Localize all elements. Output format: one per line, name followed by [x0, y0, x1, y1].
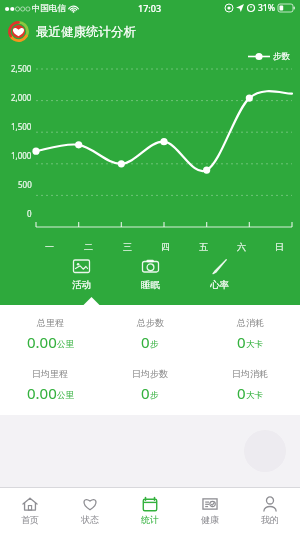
staticText: 2,500 [11, 63, 32, 74]
staticText: 步 [150, 339, 159, 350]
staticText: 一 [45, 241, 54, 252]
staticText: 总消耗 [237, 317, 264, 328]
staticText: 健康 [201, 514, 219, 525]
button[interactable]: 健康 [180, 488, 240, 533]
staticText: 2,000 [11, 92, 32, 103]
staticText: 1,000 [11, 150, 32, 161]
staticText: 步 [150, 390, 159, 401]
button[interactable]: 心率 [185, 253, 254, 291]
staticText: 31% [258, 2, 275, 14]
staticText: 五 [199, 241, 208, 252]
staticText: 17:03 [138, 2, 162, 14]
staticText: 500 [18, 179, 32, 190]
staticText: 步数 [273, 51, 290, 62]
staticText: 状态 [81, 514, 99, 525]
button[interactable]: 我的 [240, 488, 300, 533]
staticText: 四 [161, 241, 170, 252]
button[interactable]: 睡眠 [116, 253, 185, 291]
staticText: 最近健康统计分析 [36, 24, 136, 40]
staticText: 0.00 [27, 332, 57, 352]
staticText: 中国电信 [32, 3, 66, 14]
staticText: 0.00 [27, 383, 57, 403]
staticText: 我的 [261, 514, 279, 525]
staticText: 睡眠 [141, 279, 160, 291]
staticText: 公里 [57, 339, 74, 350]
button[interactable]: 统计 [120, 488, 180, 533]
staticText: 日均步数 [132, 368, 168, 379]
button[interactable]: 首页 [0, 488, 60, 533]
staticText: 0 [237, 332, 246, 352]
staticText: 大卡 [246, 339, 263, 350]
button[interactable]: 日均里程 [0, 368, 100, 403]
staticText: 心率 [210, 279, 229, 291]
staticText: 日 [275, 241, 284, 252]
staticText: 日均里程 [32, 368, 68, 379]
button[interactable]: 总步数 [100, 317, 200, 352]
button[interactable]: 总里程 [0, 317, 100, 352]
button[interactable]: 活动 [46, 253, 116, 291]
button[interactable]: 总消耗 [200, 317, 300, 352]
staticText: 1,500 [11, 121, 32, 132]
staticText: 公里 [57, 390, 74, 401]
staticText: 0 [237, 383, 246, 403]
button[interactable]: 日均消耗 [200, 368, 300, 403]
staticText: 日均消耗 [232, 368, 268, 379]
staticText: 统计 [141, 514, 159, 525]
staticText: 总步数 [137, 317, 164, 328]
staticText: 0 [27, 208, 32, 219]
staticText: 三 [123, 241, 132, 252]
staticText: 二 [84, 241, 93, 252]
staticText: 总里程 [37, 317, 64, 328]
staticText: 0 [141, 332, 150, 352]
button[interactable]: 状态 [60, 488, 120, 533]
button[interactable]: 日均步数 [100, 368, 200, 403]
staticText: 活动 [72, 279, 91, 291]
staticText: 0 [141, 383, 150, 403]
other: App icon [8, 21, 29, 42]
staticText: 大卡 [246, 390, 263, 401]
staticText: 首页 [21, 514, 39, 525]
staticText: 六 [237, 241, 246, 252]
